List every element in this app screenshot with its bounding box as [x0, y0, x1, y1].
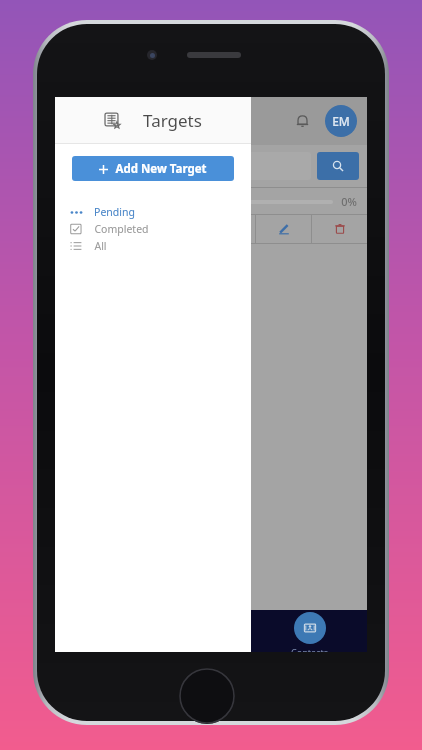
button[interactable]: All — [55, 237, 251, 254]
staticText: Pending — [94, 205, 135, 219]
staticText: Targets — [143, 109, 202, 132]
staticText: > — [315, 624, 324, 643]
button[interactable] — [200, 215, 255, 243]
staticText: Completed — [94, 222, 149, 236]
button[interactable]: Add New Target — [72, 156, 234, 181]
button[interactable] — [144, 215, 199, 243]
button[interactable]: Search — [317, 152, 359, 180]
button[interactable]: EM — [325, 105, 357, 137]
staticText: EM — [332, 113, 350, 129]
button[interactable] — [256, 215, 311, 243]
staticText: Contacts — [291, 646, 328, 652]
button[interactable]: Pending — [55, 203, 251, 220]
button[interactable]: Completed — [55, 220, 251, 237]
button[interactable]: Notifications — [287, 106, 317, 136]
button[interactable] — [312, 215, 367, 243]
staticText: Search — [71, 158, 109, 174]
staticText: Add New Target — [115, 161, 207, 177]
other: Home — [179, 668, 235, 724]
button[interactable]: Contacts — [291, 610, 328, 652]
staticText: 0% — [341, 194, 357, 209]
staticText: All — [94, 239, 107, 253]
button[interactable]: Search — [63, 152, 311, 180]
